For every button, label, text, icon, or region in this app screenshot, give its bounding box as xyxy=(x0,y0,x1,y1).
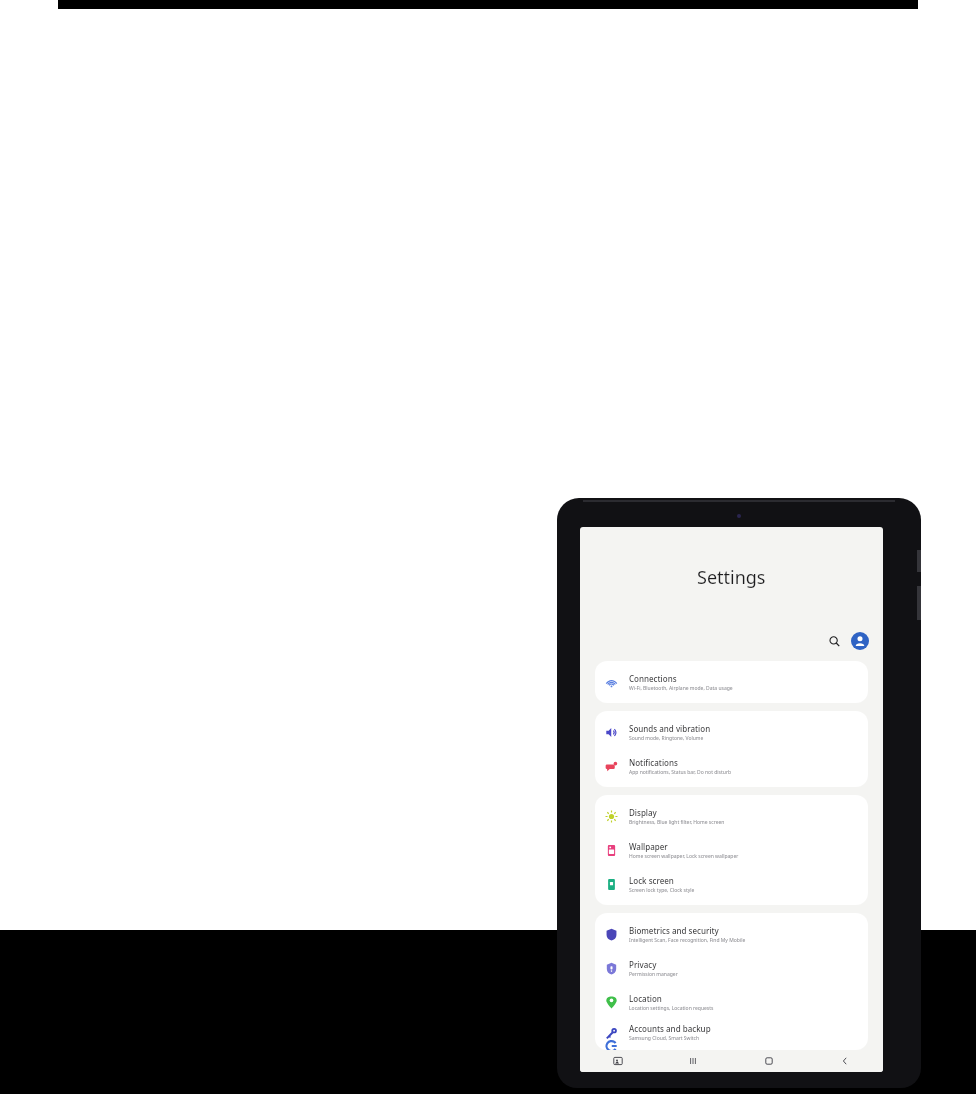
staticText: Permission manager xyxy=(629,971,678,978)
button[interactable]: Search xyxy=(824,631,844,651)
staticText: Settings xyxy=(697,565,766,590)
button[interactable]: Lock screen xyxy=(595,867,868,901)
staticText: Accounts and backup xyxy=(629,1023,711,1034)
staticText: Display xyxy=(629,807,657,818)
button[interactable]: Location xyxy=(595,985,868,1019)
button[interactable]: Sounds and vibration xyxy=(595,715,868,749)
button[interactable]: Screenshot xyxy=(580,1050,655,1072)
button[interactable]: Biometrics and security xyxy=(595,917,868,951)
staticText: App notifications, Status bar, Do not di… xyxy=(629,769,732,776)
staticText: Location xyxy=(629,993,662,1004)
button[interactable]: Wallpaper xyxy=(595,833,868,867)
staticText: Home screen wallpaper, Lock screen wallp… xyxy=(629,853,739,860)
staticText: Sound mode, Ringtone, Volume xyxy=(629,735,704,742)
staticText: Intelligent Scan, Face recognition, Find… xyxy=(629,937,746,944)
staticText: Privacy xyxy=(629,959,657,970)
staticText: Location settings, Location requests xyxy=(629,1005,714,1012)
button[interactable]: Accounts and backup xyxy=(595,1019,868,1046)
staticText: Screen lock type, Clock style xyxy=(629,887,695,894)
staticText: Wallpaper xyxy=(629,841,668,852)
button[interactable]: Account xyxy=(851,632,869,650)
staticText: Connections xyxy=(629,673,677,684)
button[interactable]: Privacy xyxy=(595,951,868,985)
staticText: Sounds and vibration xyxy=(629,723,711,734)
staticText: Wi-Fi, Bluetooth, Airplane mode, Data us… xyxy=(629,685,733,692)
staticText: Notifications xyxy=(629,757,678,768)
staticText: Brightness, Blue light filter, Home scre… xyxy=(629,819,725,826)
staticText: Lock screen xyxy=(629,875,674,886)
button[interactable]: Back xyxy=(807,1050,883,1072)
staticText: Samsung Cloud, Smart Switch xyxy=(629,1035,700,1042)
button[interactable]: Connections xyxy=(595,665,868,699)
button[interactable]: Recents xyxy=(655,1050,731,1072)
staticText: Biometrics and security xyxy=(629,925,719,936)
button[interactable]: Notifications xyxy=(595,749,868,783)
button[interactable]: Home xyxy=(731,1050,807,1072)
button[interactable]: Display xyxy=(595,799,868,833)
